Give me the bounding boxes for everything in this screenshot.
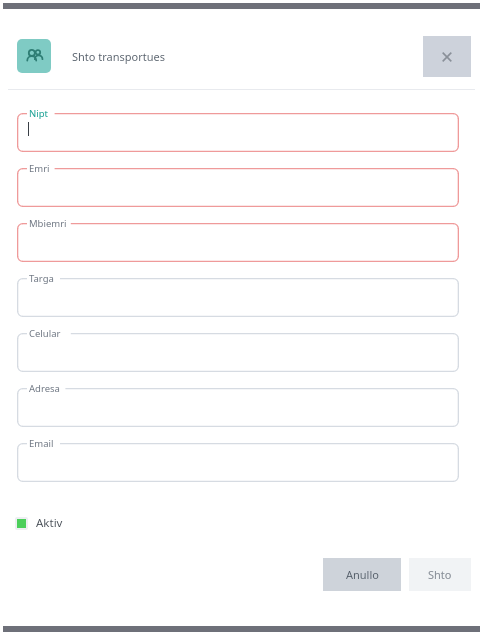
button[interactable]: Adresa: [17, 388, 459, 427]
button[interactable]: Mbiemri: [17, 223, 459, 262]
staticText: Anullo: [346, 567, 379, 582]
staticText: Emri: [29, 162, 50, 175]
button[interactable]: Emri: [17, 168, 459, 207]
button[interactable]: Email: [17, 443, 459, 482]
button[interactable]: Nipt: [17, 113, 459, 152]
staticText: Targa: [29, 272, 54, 285]
staticText: Email: [29, 437, 54, 450]
button[interactable]: Celular: [17, 333, 459, 372]
button[interactable]: Shto: [409, 558, 471, 591]
staticText: Nipt: [29, 107, 48, 120]
button[interactable]: Transporters: [17, 39, 51, 73]
staticText: Shto transportues: [72, 49, 166, 64]
staticText: Shto: [428, 567, 452, 582]
staticText: Celular: [29, 327, 61, 340]
button[interactable]: Anullo: [323, 558, 401, 591]
button[interactable]: Targa: [17, 278, 459, 317]
button[interactable]: Close: [423, 36, 471, 77]
staticText: Adresa: [29, 382, 60, 395]
staticText: Mbiemri: [29, 217, 67, 230]
staticText: Aktiv: [36, 515, 63, 531]
button[interactable]: Aktiv: [15, 512, 63, 534]
